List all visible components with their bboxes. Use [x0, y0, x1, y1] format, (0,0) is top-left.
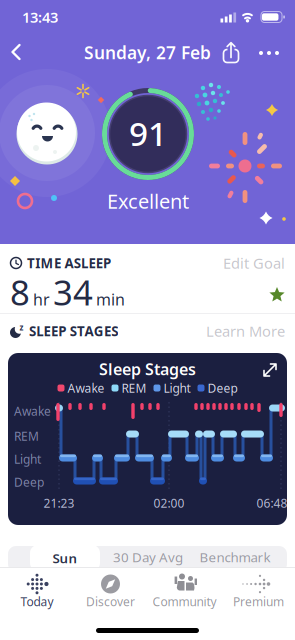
button[interactable]: Sun — [30, 545, 100, 571]
staticText: Deep — [207, 380, 237, 396]
staticText: min — [96, 289, 125, 310]
staticText: 06:48 — [256, 495, 287, 511]
staticText: 8 — [10, 269, 30, 315]
staticText: TIME ASLEEP — [27, 254, 111, 272]
staticText: REM — [121, 380, 146, 396]
button[interactable]: Community — [148, 570, 221, 614]
staticText: hr — [33, 289, 50, 310]
staticText: Excellent — [107, 188, 189, 214]
staticText: 02:00 — [153, 495, 184, 511]
staticText: Learn More — [206, 321, 285, 341]
staticText: Discover — [86, 593, 135, 609]
staticText: Today — [20, 593, 53, 609]
button[interactable]: Benchmark — [195, 544, 275, 570]
staticText: 91 — [129, 111, 167, 155]
button[interactable]: Today — [0, 570, 73, 614]
staticText: Deep — [14, 474, 44, 490]
button[interactable]: Back — [10, 43, 21, 60]
button[interactable]: More options — [259, 51, 279, 55]
staticText: Light — [163, 380, 190, 396]
button[interactable]: Learn More — [205, 318, 285, 344]
button[interactable]: Share — [221, 41, 241, 63]
staticText: 30 Day Avg — [113, 548, 183, 566]
staticText: Awake — [67, 380, 104, 396]
staticText: Community — [152, 593, 216, 609]
staticText: Edit Goal — [223, 253, 285, 273]
staticText: Sunday, 27 Feb — [84, 41, 211, 64]
staticText: Sleep Stages — [99, 358, 196, 380]
button[interactable]: Premium — [222, 570, 295, 614]
button[interactable]: 30 Day Avg — [108, 544, 188, 570]
button[interactable]: Expand chart — [263, 361, 277, 379]
staticText: Benchmark — [199, 548, 270, 566]
staticText: SLEEP STAGES — [29, 322, 118, 340]
staticText: Premium — [233, 593, 284, 609]
staticText: REM — [14, 428, 39, 444]
staticText: 34 — [53, 269, 93, 315]
staticText: 13:43 — [22, 7, 58, 27]
staticText: 21:23 — [43, 495, 74, 511]
staticText: Awake — [14, 403, 51, 419]
staticText: Sun — [52, 549, 77, 567]
staticText: Light — [14, 451, 41, 467]
button[interactable]: Edit Goal — [215, 250, 285, 276]
staticText: z — [19, 322, 23, 333]
button[interactable]: Discover — [74, 570, 147, 614]
